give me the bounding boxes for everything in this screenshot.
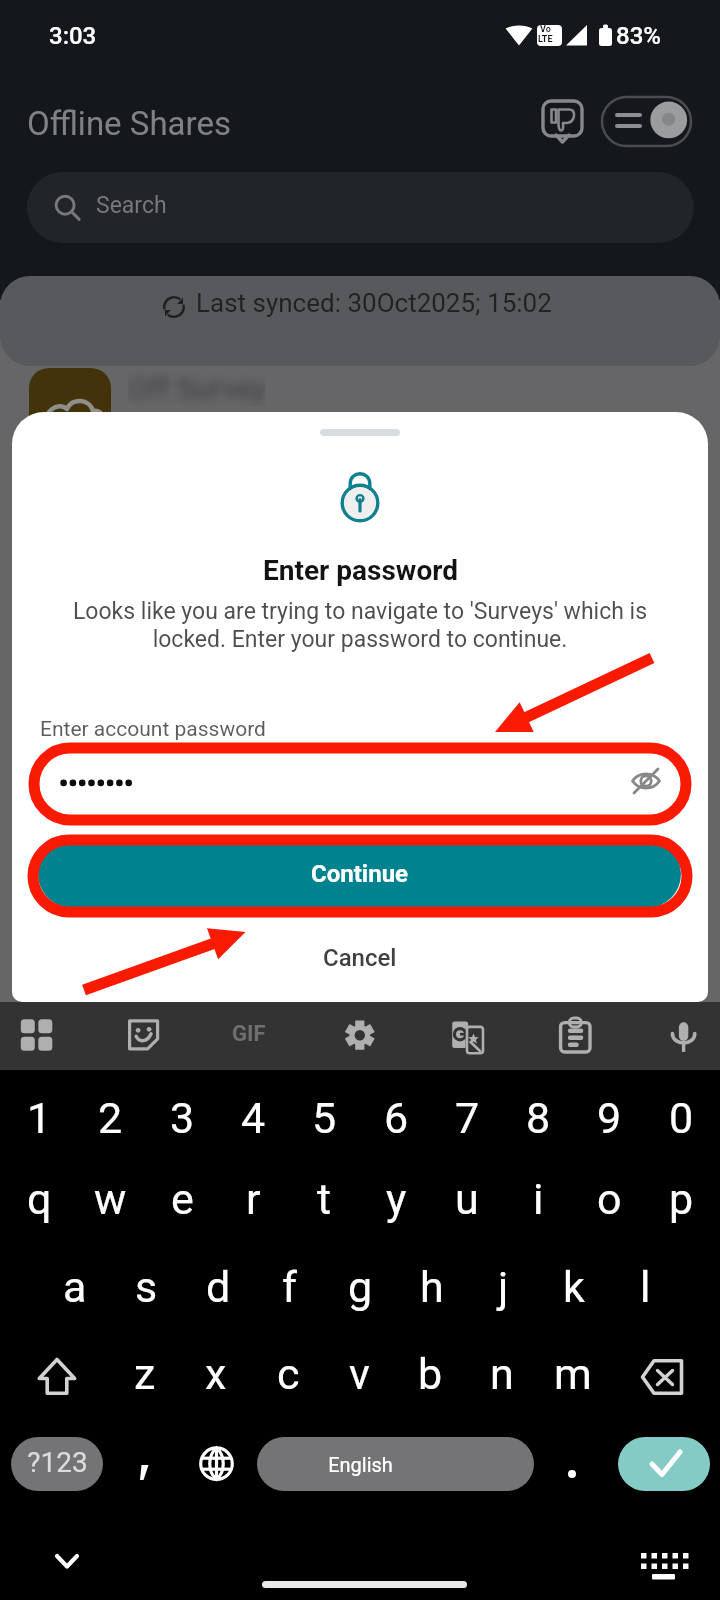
staticText: Offline Shares xyxy=(27,104,231,143)
button[interactable]: e xyxy=(147,1165,217,1235)
button[interactable]: g xyxy=(325,1253,395,1323)
button[interactable]: 6 xyxy=(361,1084,431,1154)
staticText: d xyxy=(206,1262,231,1312)
staticText: 2 xyxy=(98,1093,123,1143)
staticText: 9 xyxy=(597,1093,622,1143)
staticText: Enter account password xyxy=(40,717,266,742)
staticText: z xyxy=(134,1349,156,1399)
staticText: j xyxy=(498,1262,509,1312)
staticText: 7 xyxy=(455,1093,480,1143)
staticText: 1 xyxy=(27,1093,52,1143)
staticText: 5 xyxy=(312,1093,337,1143)
staticText: v xyxy=(349,1349,370,1399)
button[interactable]: 8 xyxy=(503,1084,573,1154)
staticText: Search xyxy=(96,192,167,219)
staticText: e xyxy=(171,1174,194,1224)
button[interactable]: 3 xyxy=(147,1084,217,1154)
button[interactable]: 1 xyxy=(4,1084,74,1154)
staticText: g xyxy=(348,1262,373,1312)
staticText: q xyxy=(27,1174,52,1224)
button[interactable]: 2 xyxy=(75,1084,145,1154)
button[interactable]: v xyxy=(324,1340,394,1410)
button[interactable]: c xyxy=(253,1340,323,1410)
staticText: 3:03 xyxy=(49,22,97,50)
staticText: u xyxy=(455,1174,479,1224)
staticText: 3 xyxy=(170,1093,195,1143)
staticText: f xyxy=(282,1262,297,1312)
button[interactable]: 5 xyxy=(289,1084,359,1154)
button[interactable]: 0 xyxy=(646,1084,716,1154)
button[interactable]: y xyxy=(361,1165,431,1235)
staticText: w xyxy=(94,1174,127,1224)
button[interactable]: u xyxy=(432,1165,502,1235)
button[interactable]: w xyxy=(75,1165,145,1235)
staticText: Cancel xyxy=(323,944,397,972)
staticText: Vo xyxy=(540,24,551,35)
staticText: Continue xyxy=(311,860,409,888)
button[interactable]: x xyxy=(181,1340,251,1410)
staticText: 0 xyxy=(669,1093,694,1143)
button[interactable]: o xyxy=(574,1165,644,1235)
button[interactable]: 7 xyxy=(432,1084,502,1154)
button[interactable]: k xyxy=(539,1253,609,1323)
staticText: Enter password xyxy=(263,554,458,587)
button[interactable]: q xyxy=(4,1165,74,1235)
staticText: n xyxy=(490,1349,514,1399)
staticText: GIF xyxy=(232,1021,266,1047)
staticText: l xyxy=(640,1262,651,1312)
staticText: 83% xyxy=(616,22,661,50)
staticText: English xyxy=(328,1453,393,1476)
button[interactable]: j xyxy=(468,1253,538,1323)
staticText: Last synced: 30Oct2025; 15:02 xyxy=(196,288,552,318)
staticText: k xyxy=(563,1262,585,1312)
staticText: b xyxy=(418,1349,443,1399)
staticText: 6 xyxy=(384,1093,409,1143)
button[interactable]: r xyxy=(218,1165,288,1235)
staticText: c xyxy=(277,1349,300,1399)
staticText: a xyxy=(63,1262,87,1312)
staticText: s xyxy=(135,1262,158,1312)
button[interactable]: i xyxy=(503,1165,573,1235)
staticText: 8 xyxy=(526,1093,551,1143)
staticText: x xyxy=(205,1349,227,1399)
staticText: 4 xyxy=(241,1093,266,1143)
button[interactable]: l xyxy=(610,1253,680,1323)
staticText: ?123 xyxy=(27,1446,88,1479)
staticText: m xyxy=(554,1349,592,1399)
button[interactable]: b xyxy=(395,1340,465,1410)
button[interactable]: s xyxy=(111,1253,181,1323)
staticText: o xyxy=(597,1174,622,1224)
button[interactable]: 9 xyxy=(574,1084,644,1154)
button[interactable]: p xyxy=(646,1165,716,1235)
button[interactable]: Cancel xyxy=(260,930,460,986)
staticText: Off Survey xyxy=(128,371,266,406)
button[interactable]: z xyxy=(110,1340,180,1410)
button[interactable]: h xyxy=(397,1253,467,1323)
staticText: Looks like you are trying to navigate to… xyxy=(40,598,680,653)
button[interactable]: 4 xyxy=(218,1084,288,1154)
button[interactable]: Continue xyxy=(38,840,681,908)
button[interactable]: Password field xyxy=(38,747,682,817)
staticText: y xyxy=(386,1174,407,1224)
button[interactable]: m xyxy=(538,1340,608,1410)
staticText: r xyxy=(246,1174,261,1224)
button[interactable]: a xyxy=(40,1253,110,1323)
button[interactable]: t xyxy=(289,1165,359,1235)
staticText: t xyxy=(317,1174,332,1224)
button[interactable]: d xyxy=(183,1253,253,1323)
staticText: h xyxy=(420,1262,444,1312)
button[interactable]: n xyxy=(467,1340,537,1410)
staticText: i xyxy=(533,1174,544,1224)
staticText: p xyxy=(669,1174,694,1224)
staticText: LTE xyxy=(538,34,553,45)
button[interactable]: f xyxy=(254,1253,324,1323)
